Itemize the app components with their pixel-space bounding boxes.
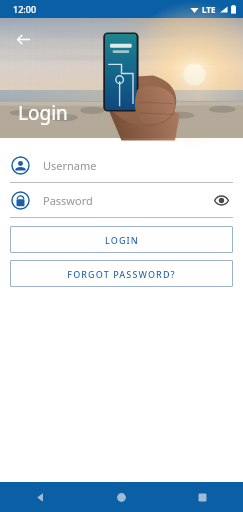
button[interactable]: LOGIN — [10, 226, 233, 253]
staticText: Username — [43, 158, 97, 173]
button[interactable]: Back — [10, 26, 36, 52]
button[interactable]: Username field — [0, 148, 243, 183]
button[interactable]: FORGOT PASSWORD? — [10, 260, 233, 287]
button[interactable]: Recent apps — [162, 482, 243, 512]
button[interactable]: Back — [0, 482, 81, 512]
staticText: Login — [18, 100, 68, 126]
button[interactable]: Show password — [210, 189, 232, 211]
button[interactable]: Password field — [0, 183, 243, 218]
staticText: LTE — [202, 4, 216, 15]
button[interactable]: Home — [81, 482, 162, 512]
staticText: 12:00 — [13, 3, 37, 15]
staticText: FORGOT PASSWORD? — [67, 268, 176, 280]
staticText: LOGIN — [105, 234, 139, 246]
staticText: Password — [43, 193, 93, 208]
